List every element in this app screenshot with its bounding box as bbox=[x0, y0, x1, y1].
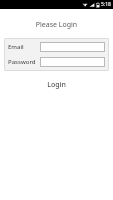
staticText: Password bbox=[8, 58, 40, 66]
staticText: Email bbox=[8, 43, 40, 51]
button[interactable] bbox=[40, 42, 105, 52]
staticText: Login bbox=[47, 80, 66, 90]
button[interactable] bbox=[40, 57, 105, 67]
staticText: 5:18 bbox=[101, 1, 111, 8]
button[interactable]: Login bbox=[0, 80, 113, 90]
staticText: Please Login bbox=[0, 20, 113, 30]
